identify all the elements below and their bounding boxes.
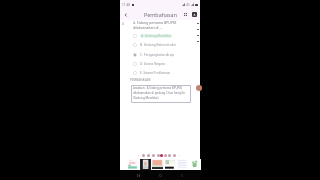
button[interactable]: D. Istana Negara	[133, 60, 191, 67]
button[interactable]: Back	[177, 171, 186, 180]
staticText: 4G	[186, 3, 190, 7]
button[interactable]: Page 8	[168, 154, 171, 157]
button[interactable]: Home	[156, 171, 165, 180]
staticText: 4	[122, 22, 124, 26]
staticText: PEMBAHASAN	[130, 78, 151, 82]
button[interactable]: Page preview 4	[165, 159, 176, 170]
staticText: A. Gedung Merdeka	[141, 34, 171, 38]
button[interactable]: C. Pengangkatan Arsip	[133, 51, 191, 58]
button[interactable]: Page 2	[142, 154, 145, 157]
button[interactable]: Page 3	[147, 154, 150, 157]
staticText: Jawaban : A Sidang pertama BPUPKI dilaks…	[133, 86, 186, 99]
staticText: 11:48	[122, 3, 131, 7]
button[interactable]: Page preview 2	[140, 159, 151, 170]
button[interactable]: Question list	[181, 10, 190, 19]
button[interactable]: Open image	[192, 12, 197, 17]
button[interactable]: Page preview 3	[152, 159, 163, 170]
button[interactable]: Page preview 6	[190, 159, 201, 170]
button[interactable]: Page 6	[160, 154, 163, 157]
button[interactable]: Page preview 1	[127, 159, 138, 170]
button[interactable]: Page 4	[152, 154, 155, 157]
staticText: Pembahasan	[144, 11, 177, 18]
button[interactable]: Assistant	[196, 85, 202, 91]
button[interactable]: Back	[121, 10, 130, 19]
button[interactable]: Recent apps	[134, 171, 143, 180]
button[interactable]: B. Gedung Rekonstruksi	[133, 41, 191, 48]
staticText: D. Istana Negara	[140, 62, 166, 66]
button[interactable]: Page 7	[164, 154, 167, 157]
staticText: B. Gedung Rekonstruksi	[140, 43, 176, 47]
button[interactable]: A. Gedung Merdeka	[133, 32, 191, 39]
staticText: C. Pengangkatan Arsip	[140, 53, 174, 57]
button[interactable]: E. Istana Proklamasi	[133, 69, 191, 76]
button[interactable]: Page 5	[157, 154, 160, 157]
button[interactable]: Page preview 5	[177, 159, 188, 170]
button[interactable]: Page 9	[173, 154, 176, 157]
staticText: 4. Sidang pertama BPUPKI dilaksanakan di…	[133, 20, 177, 30]
staticText: E. Istana Proklamasi	[140, 71, 171, 75]
